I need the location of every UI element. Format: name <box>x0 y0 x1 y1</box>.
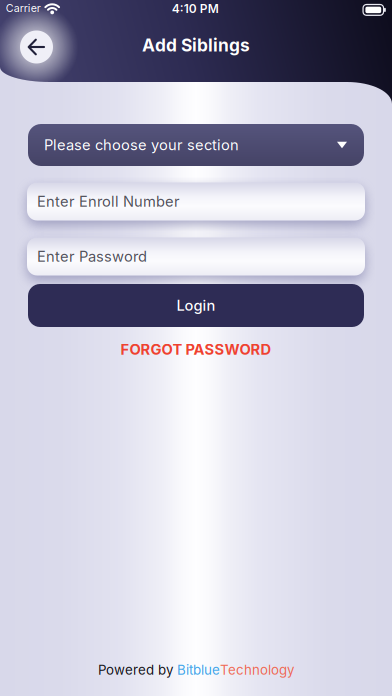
staticText: 4:10 PM <box>172 1 219 16</box>
staticText: Login <box>176 297 215 314</box>
button[interactable]: Enter Password <box>27 237 365 275</box>
staticText: FORGOT PASSWORD <box>120 341 271 358</box>
staticText: Technology <box>220 662 294 678</box>
staticText: Please choose your section <box>44 136 239 154</box>
staticText: Add Siblings <box>142 35 250 55</box>
button[interactable]: Enter Enroll Number <box>27 182 365 220</box>
staticText: Bitblue <box>177 662 220 678</box>
button[interactable]: FORGOT PASSWORD <box>120 341 271 358</box>
staticText: Powered by <box>98 662 177 678</box>
staticText: Enter Password <box>37 248 147 265</box>
button[interactable]: Please choose your section <box>28 124 364 166</box>
staticText: Carrier <box>6 2 41 14</box>
staticText: Enter Enroll Number <box>37 193 180 210</box>
button[interactable] <box>16 27 56 67</box>
button[interactable]: Login <box>28 284 364 327</box>
